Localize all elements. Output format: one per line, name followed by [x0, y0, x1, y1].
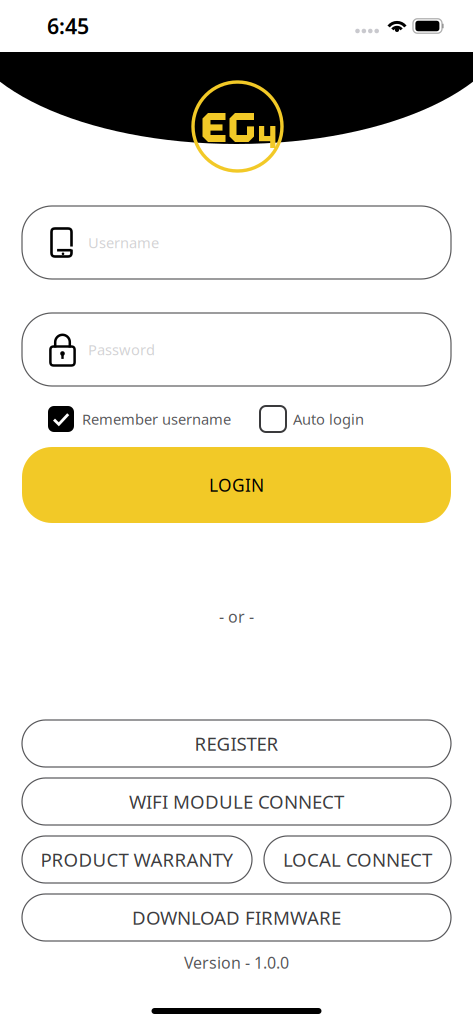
- staticText: LOCAL CONNECT: [283, 847, 432, 872]
- button[interactable]: DOWNLOAD FIRMWARE: [22, 894, 451, 941]
- staticText: Version - 1.0.0: [184, 952, 289, 973]
- staticText: 6:45: [47, 12, 89, 40]
- button[interactable]: LOGIN: [22, 447, 451, 523]
- staticText: Remember username: [82, 409, 231, 429]
- staticText: Password: [88, 340, 155, 359]
- staticText: Auto login: [293, 409, 364, 429]
- button[interactable]: LOCAL CONNECT: [264, 836, 451, 883]
- button[interactable]: Auto login: [260, 406, 364, 432]
- staticText: DOWNLOAD FIRMWARE: [132, 905, 341, 930]
- staticText: PRODUCT WARRANTY: [40, 847, 233, 872]
- staticText: WIFI MODULE CONNECT: [129, 789, 344, 814]
- button[interactable]: Remember username: [48, 406, 231, 432]
- staticText: REGISTER: [194, 731, 278, 756]
- staticText: LOGIN: [209, 473, 264, 496]
- button[interactable]: WIFI MODULE CONNECT: [22, 778, 451, 825]
- staticText: - or -: [219, 606, 254, 627]
- button[interactable]: REGISTER: [22, 720, 451, 767]
- staticText: Username: [88, 233, 159, 252]
- button[interactable]: PRODUCT WARRANTY: [22, 836, 252, 883]
